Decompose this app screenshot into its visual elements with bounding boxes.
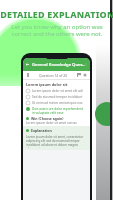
button[interactable]: Ut enim ad minim veniam quis nos: [26, 100, 87, 106]
button[interactable]: Flag: [77, 73, 81, 77]
button[interactable]: Duis aute irure dolor reprehenderit in v…: [26, 106, 87, 116]
staticText: DETAILED EXPLANATIONS: [0, 8, 113, 20]
staticText: Duis aute irure dolor reprehenderit in v…: [32, 107, 84, 115]
button[interactable]: Bookmark: [26, 73, 30, 77]
staticText: Question 14 of 20: [39, 73, 68, 78]
staticText: Explanation: [31, 128, 52, 133]
staticText: Lorem ipsum dolor sit: [26, 82, 68, 87]
staticText: Win (Choose again): [31, 116, 64, 121]
button[interactable]: Back: [25, 62, 30, 67]
staticText: Sed do eiusmod tempor incididunt: [32, 95, 83, 99]
staticText: General Knowledge Ques..: [32, 62, 85, 68]
button[interactable]: Lorem ipsum dolor sit amet elit adi: [26, 88, 87, 94]
button[interactable]: Settings: [83, 73, 87, 77]
staticText: Lorem ipsum dolor sit amet, consectetur …: [26, 135, 87, 148]
button[interactable]: Back: [23, 58, 90, 71]
button[interactable]: Sed do eiusmod tempor incididunt: [26, 94, 87, 100]
staticText: Lorem ipsum dolor sit amet elit adi: [32, 89, 83, 93]
staticText: Let you know why an option was correct a…: [11, 23, 103, 38]
staticText: Lorem ipsum dolor sit amet consec: [26, 121, 77, 125]
staticText: Ut enim ad minim veniam quis nos: [32, 101, 83, 105]
